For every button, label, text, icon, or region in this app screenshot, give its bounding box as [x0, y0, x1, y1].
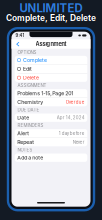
staticText: Alert	[17, 130, 29, 136]
staticText: Add a note	[17, 155, 43, 161]
button[interactable]: Back	[13, 39, 21, 48]
staticText: 1 day before	[59, 131, 85, 136]
staticText: Assignment	[35, 41, 66, 47]
staticText: 9:41	[15, 33, 24, 38]
staticText: UNLIMITED	[19, 1, 82, 15]
staticText: Overdue	[66, 99, 85, 105]
staticText: Never	[73, 139, 85, 145]
staticText: Repeat	[17, 139, 34, 145]
button[interactable]: Delete	[15, 73, 87, 82]
button[interactable]: Complete	[15, 56, 87, 64]
staticText: DUE DATE	[17, 107, 39, 112]
button[interactable]: Edit	[15, 65, 87, 73]
staticText: Apr 14, 2024	[57, 115, 85, 120]
staticText: Delete	[23, 75, 39, 81]
staticText: Chemistry	[17, 99, 43, 105]
staticText: Complete, Edit, Delete	[6, 13, 96, 23]
staticText: NOTES	[17, 147, 32, 152]
staticText: Edit	[23, 66, 32, 72]
staticText: OPTIONS	[17, 50, 36, 55]
staticText: Complete	[23, 57, 47, 63]
staticText: Date	[17, 115, 29, 121]
staticText: REMINDERS	[17, 123, 43, 128]
staticText: Problems 1-15, Page 201	[17, 90, 73, 96]
staticText: ASSIGNMENT	[17, 83, 46, 88]
